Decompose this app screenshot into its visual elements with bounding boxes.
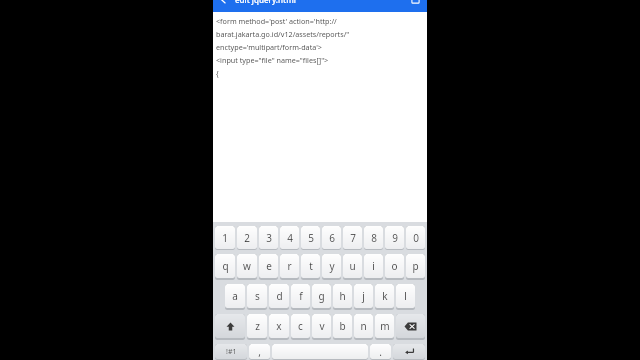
staticText: t (309, 259, 313, 273)
staticText: . (379, 345, 382, 359)
button[interactable]: Symbols (215, 344, 247, 360)
button[interactable]: 0 (406, 226, 425, 250)
button[interactable]: Backspace (396, 314, 425, 340)
staticText: s (255, 289, 260, 303)
button[interactable]: x (269, 314, 289, 340)
staticText: 7 (350, 231, 356, 245)
button[interactable]: v (312, 314, 331, 340)
staticText: p (412, 259, 419, 273)
button[interactable]: 8 (364, 226, 383, 250)
button[interactable]: s (247, 284, 267, 310)
staticText: 4 (287, 231, 293, 245)
button[interactable]: 4 (280, 226, 299, 250)
button[interactable]: w (237, 254, 257, 280)
staticText: y (329, 259, 335, 273)
button[interactable]: y (322, 254, 341, 280)
button[interactable]: . (370, 344, 391, 360)
staticText: e (266, 259, 272, 273)
button[interactable]: 9 (385, 226, 404, 250)
staticText: <form method='post' action='http:// (216, 16, 337, 26)
button[interactable]: u (343, 254, 362, 280)
button[interactable]: z (247, 314, 267, 340)
button[interactable]: l (396, 284, 415, 310)
staticText: b (339, 319, 346, 333)
staticText: o (391, 259, 398, 273)
button[interactable]: e (259, 254, 278, 280)
button[interactable] (272, 344, 368, 360)
button[interactable]: 1 (215, 226, 235, 250)
button[interactable]: k (375, 284, 394, 310)
button[interactable]: Enter (393, 344, 425, 360)
button[interactable]: 3 (259, 226, 278, 250)
button[interactable]: 7 (343, 226, 362, 250)
staticText: 6 (329, 231, 335, 245)
button[interactable]: t (301, 254, 320, 280)
staticText: !#1 (226, 347, 237, 357)
staticText: w (243, 259, 251, 273)
staticText: enctype='multipart/form-data'> (216, 42, 322, 52)
staticText: v (319, 319, 325, 333)
button[interactable]: n (354, 314, 373, 340)
button[interactable]: 5 (301, 226, 320, 250)
staticText: 0 (413, 231, 419, 245)
staticText: u (349, 259, 356, 273)
button[interactable]: h (333, 284, 352, 310)
staticText: l (404, 289, 407, 303)
button[interactable]: Shift (215, 314, 245, 340)
button[interactable]: Save (405, 0, 425, 5)
staticText: d (276, 289, 283, 303)
button[interactable]: f (291, 284, 310, 310)
staticText: n (360, 319, 367, 333)
staticText: r (287, 259, 292, 273)
staticText: f (299, 289, 303, 303)
button[interactable]: c (291, 314, 310, 340)
staticText: g (318, 289, 325, 303)
button[interactable]: , (249, 344, 270, 360)
staticText: 9 (392, 231, 398, 245)
button[interactable]: p (406, 254, 425, 280)
staticText: a (232, 289, 238, 303)
staticText: 2 (244, 231, 250, 245)
staticText: j (362, 289, 365, 303)
button[interactable]: m (375, 314, 394, 340)
button[interactable]: a (225, 284, 245, 310)
staticText: i (372, 259, 375, 273)
button[interactable]: o (385, 254, 404, 280)
staticText: , (258, 345, 261, 359)
staticText: m (380, 319, 390, 333)
staticText: h (339, 289, 346, 303)
staticText: z (255, 319, 260, 333)
staticText: c (298, 319, 303, 333)
staticText: 3 (266, 231, 272, 245)
staticText: x (276, 319, 282, 333)
staticText: q (222, 259, 229, 273)
staticText: 1 (222, 231, 228, 245)
staticText: <input type="file" name="files[]"> (216, 55, 329, 65)
button[interactable]: j (354, 284, 373, 310)
staticText: 5 (308, 231, 314, 245)
button[interactable]: 2 (237, 226, 257, 250)
button[interactable]: d (269, 284, 289, 310)
button[interactable]: Back (213, 0, 233, 5)
staticText: edit jquery.html (235, 0, 296, 5)
button[interactable]: q (215, 254, 235, 280)
button[interactable]: i (364, 254, 383, 280)
button[interactable]: b (333, 314, 352, 340)
button[interactable]: g (312, 284, 331, 310)
button[interactable]: <form method='post' action='http:// (213, 12, 427, 222)
staticText: barat.jakarta.go.id/v12/assets/reports/" (216, 29, 350, 39)
button[interactable]: 6 (322, 226, 341, 250)
staticText: 8 (371, 231, 377, 245)
staticText: { (216, 68, 219, 78)
staticText: k (382, 289, 388, 303)
button[interactable]: r (280, 254, 299, 280)
